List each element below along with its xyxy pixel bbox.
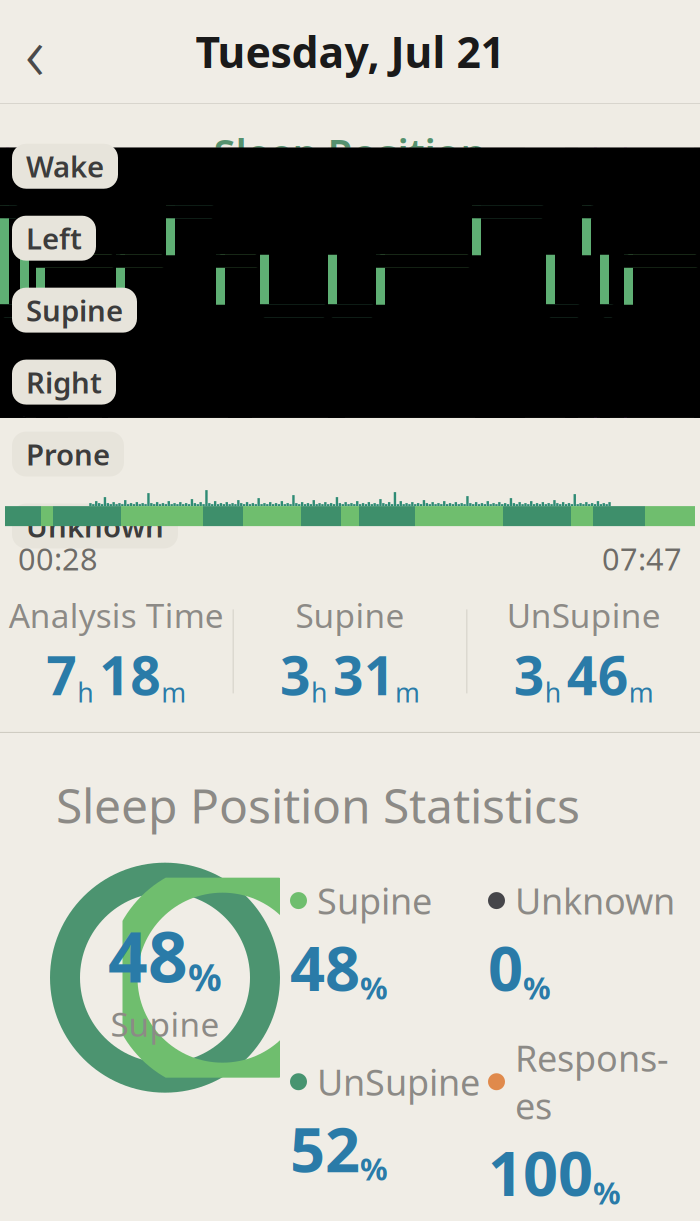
staticText: Right bbox=[26, 363, 102, 402]
staticText: % bbox=[523, 967, 551, 1008]
staticText: Unknown bbox=[26, 506, 164, 545]
staticText: h bbox=[77, 674, 93, 710]
staticText: Analysis Time bbox=[9, 593, 224, 637]
staticText: Supine bbox=[110, 1002, 219, 1046]
staticText: % bbox=[188, 952, 222, 1002]
staticText: Supine bbox=[26, 291, 123, 330]
staticText: 48 bbox=[290, 926, 360, 1008]
staticText: 46 bbox=[567, 639, 629, 710]
staticText: 3 bbox=[280, 639, 311, 710]
staticText: 0 bbox=[488, 926, 523, 1008]
staticText: Supine bbox=[317, 877, 432, 924]
staticText: Unknown bbox=[515, 877, 675, 924]
staticText: Tuesday, Jul 21 bbox=[195, 23, 504, 80]
staticText: Left bbox=[26, 219, 82, 258]
staticText: Prone bbox=[26, 435, 110, 474]
staticText: Sleep Position bbox=[213, 126, 486, 179]
button[interactable]: Back bbox=[0, 16, 70, 86]
staticText: 31 bbox=[333, 639, 395, 710]
staticText: % bbox=[593, 1172, 621, 1213]
staticText: m bbox=[395, 674, 420, 710]
staticText: 18 bbox=[99, 639, 161, 710]
staticText: 48 bbox=[108, 909, 188, 1002]
staticText: 00:28 bbox=[18, 538, 98, 579]
staticText: m bbox=[161, 674, 186, 710]
staticText: % bbox=[360, 967, 388, 1008]
staticText: % bbox=[360, 1148, 388, 1189]
staticText: UnSupine bbox=[317, 1058, 480, 1106]
staticText: 07:47 bbox=[602, 538, 682, 579]
staticText: ‹ bbox=[25, 2, 45, 101]
staticText: Sleep Position Statistics bbox=[56, 773, 580, 837]
staticText: Wake bbox=[26, 147, 104, 186]
staticText: h bbox=[311, 674, 327, 710]
staticText: 3 bbox=[514, 639, 545, 710]
staticText: 52 bbox=[290, 1108, 360, 1189]
staticText: 100 bbox=[488, 1131, 593, 1213]
staticText: 7 bbox=[46, 639, 77, 710]
staticText: h bbox=[545, 674, 561, 710]
staticText: Responses bbox=[515, 1034, 669, 1129]
staticText: m bbox=[629, 674, 654, 710]
staticText: UnSupine bbox=[507, 593, 661, 637]
staticText: Supine bbox=[295, 593, 404, 637]
